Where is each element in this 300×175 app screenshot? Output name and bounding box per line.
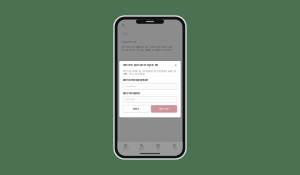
staticText: Nom et prenom du proprietaire [123,79,148,81]
staticText: Confirmer [159,108,169,110]
staticText: Profil [172,148,176,150]
staticText: Numero de telephone [123,92,140,95]
button[interactable]: Profil [166,142,182,151]
staticText: Digital Key [122,40,137,43]
button[interactable]: Accueil [117,142,134,151]
staticText: sur un service, ou pour signaler un inci… [122,49,173,51]
staticText: Confirmer autorisation Digital Key [123,64,158,66]
staticText: Annuler [132,108,139,110]
button[interactable]: Mes cles [134,142,150,151]
button[interactable]: Annuler [123,105,149,113]
staticText: Mes cles [139,148,145,150]
button[interactable]: Fermer [174,64,177,67]
staticText: Merci de verifier les coordonnees du pro… [123,70,176,73]
button[interactable]: Confirmer [151,105,177,113]
staticText: valider cette autorisation. [123,73,146,75]
staticText: Aide [157,148,160,150]
button[interactable]: Aide [150,142,166,151]
staticText: Ne contactez Digital Key que si vous ave… [122,46,172,49]
staticText: ex. Jean Dupont [125,85,137,87]
staticText: ex. 06 12 34 56 [125,99,135,101]
button[interactable]: Retour [117,19,128,29]
